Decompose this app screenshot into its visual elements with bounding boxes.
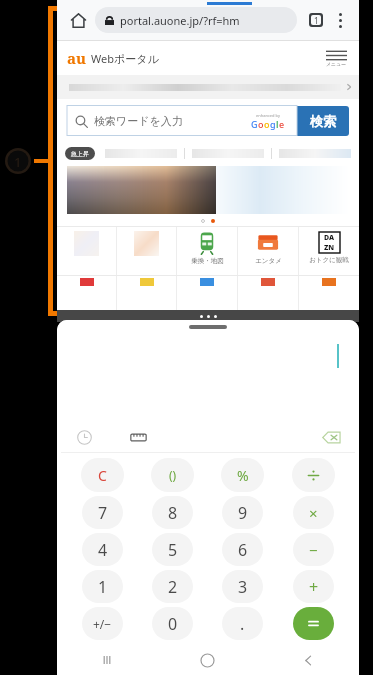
staticText: × [309,503,318,523]
button[interactable]: Divide [292,458,335,492]
staticText: メニュー [326,61,347,67]
staticText: 0 [168,613,178,635]
staticText: + [309,576,319,598]
button[interactable]: 4 [82,533,123,566]
button[interactable]: . [222,607,263,640]
staticText: 1 [314,15,319,25]
button[interactable]: 乗換・地図 [177,227,237,275]
button[interactable]: More options [329,9,351,31]
button[interactable]: Back [258,645,359,675]
button[interactable]: − [293,533,334,566]
staticText: エンタメ [255,257,282,265]
button[interactable]: + [293,570,334,603]
button[interactable]: 2 [152,570,193,603]
button[interactable]: +/− [82,607,123,640]
staticText: 9 [238,502,248,524]
staticText: % [237,466,249,485]
staticText: 5 [168,539,178,561]
button[interactable]: () [151,458,194,492]
staticText: 1 [14,153,22,171]
button[interactable]: portal.auone.jp/?rf=hm [95,7,297,33]
button[interactable]: DA [299,227,359,275]
button[interactable]: % [221,458,264,492]
button[interactable]: Unit converter [125,424,151,450]
button[interactable]: Recent apps [57,645,157,675]
button[interactable]: 急上昇 [65,147,95,160]
button[interactable]: C [81,458,124,492]
button[interactable] [216,166,349,214]
staticText: au [67,48,87,68]
staticText: l [276,118,279,130]
button[interactable]: 6 [222,533,263,566]
staticText: 検索 [310,113,336,129]
staticText: e [279,118,285,130]
button[interactable] [117,227,176,275]
staticText: 4 [98,539,108,561]
button[interactable]: Backspace [317,423,345,451]
staticText: o [264,118,270,130]
button[interactable]: 検索 [297,106,349,136]
staticText: 乗換・地図 [191,257,224,265]
button[interactable]: Tabs [303,7,329,33]
button[interactable]: Home [157,645,258,675]
button[interactable]: 検索ワードを入力 [67,106,297,136]
staticText: 6 [238,539,248,561]
button[interactable]: 8 [152,496,193,529]
staticText: enhanced by [256,113,281,118]
button[interactable]: 0 [152,607,193,640]
staticText: g [270,118,276,130]
button[interactable]: Menu [324,48,349,69]
staticText: Webポータル [91,51,159,66]
button[interactable] [67,166,216,214]
staticText: − [309,540,318,560]
staticText: おトクに観戦 [309,256,349,264]
staticText: . [240,613,245,635]
button[interactable]: 7 [82,496,123,529]
button[interactable]: Drag handle [189,325,227,329]
staticText: portal.auone.jp/?rf=hm [120,13,240,28]
button[interactable]: 1 [82,570,123,603]
staticText: 8 [168,502,178,524]
staticText: ZN [324,243,335,253]
staticText: 3 [238,576,248,598]
button[interactable]: 5 [152,533,193,566]
staticText: +/− [93,616,112,632]
staticText: C [98,466,107,485]
staticText: o [258,118,264,130]
button[interactable] [57,227,116,275]
button[interactable]: Home [65,7,91,33]
staticText: 検索ワードを入力 [94,114,183,128]
button[interactable]: 3 [222,570,263,603]
button[interactable]: × [293,496,334,529]
staticText: 1 [98,576,108,598]
staticText: 7 [98,502,108,524]
button[interactable]: Equals [293,607,334,640]
button[interactable]: 9 [222,496,263,529]
button[interactable]: History [71,424,97,450]
staticText: G [251,118,258,130]
staticText: 2 [168,576,178,598]
staticText: 急上昇 [71,150,89,158]
staticText: DA [324,233,335,243]
staticText: () [169,467,177,483]
button[interactable]: エンタメ [238,227,298,275]
